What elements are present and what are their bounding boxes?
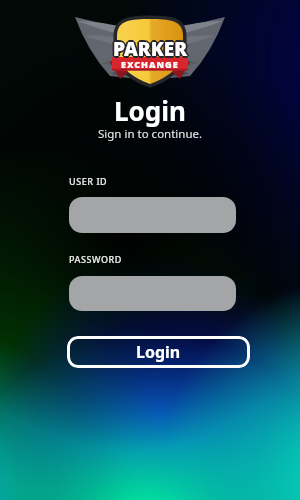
staticText: PARKER [113, 36, 188, 62]
staticText: PARKER [114, 35, 189, 61]
button[interactable] [69, 197, 236, 233]
staticText: PARKER [112, 37, 187, 63]
staticText: PARKER [113, 34, 188, 60]
staticText: Login [114, 93, 186, 128]
staticText: PARKER [111, 36, 186, 62]
button[interactable] [69, 276, 236, 311]
staticText: PASSWORD [69, 253, 122, 265]
staticText: Login [136, 341, 181, 363]
staticText: PARKER [115, 36, 190, 62]
staticText: EXCHANGE [121, 58, 179, 70]
staticText: PARKER [112, 35, 187, 61]
staticText: PARKER [113, 38, 188, 64]
staticText: Sign in to continue. [98, 126, 203, 142]
button[interactable]: Login [67, 336, 250, 368]
staticText: USER ID [69, 175, 108, 187]
staticText: PARKER [114, 37, 189, 63]
